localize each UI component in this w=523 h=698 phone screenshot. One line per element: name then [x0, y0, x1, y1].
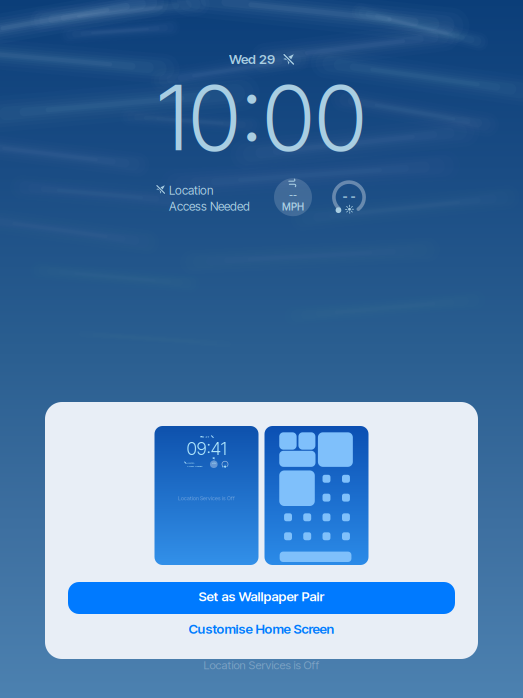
- staticText: Location Services is Off: [178, 495, 235, 501]
- staticText: 09:41: [186, 438, 226, 459]
- button[interactable]: Customise Home Screen: [68, 618, 455, 640]
- staticText: Set as Wallpaper Pair: [198, 588, 324, 604]
- staticText: Location: [169, 183, 213, 198]
- staticText: Customise Home Screen: [188, 621, 334, 637]
- staticText: - -: [223, 463, 226, 465]
- staticText: Access Needed: [187, 465, 202, 467]
- staticText: Wed 29: [229, 51, 275, 67]
- staticText: Access Needed: [169, 199, 250, 214]
- staticText: Wed 29: [200, 435, 210, 438]
- staticText: - -: [342, 189, 355, 203]
- staticText: MPH: [282, 201, 304, 213]
- staticText: 10:00: [156, 64, 366, 172]
- button[interactable]: Set as Wallpaper Pair: [68, 582, 455, 614]
- staticText: --: [213, 459, 215, 462]
- staticText: --: [289, 189, 297, 200]
- staticText: Location Services is Off: [203, 658, 319, 672]
- staticText: Location: [187, 461, 194, 464]
- staticText: MPH: [212, 462, 216, 464]
